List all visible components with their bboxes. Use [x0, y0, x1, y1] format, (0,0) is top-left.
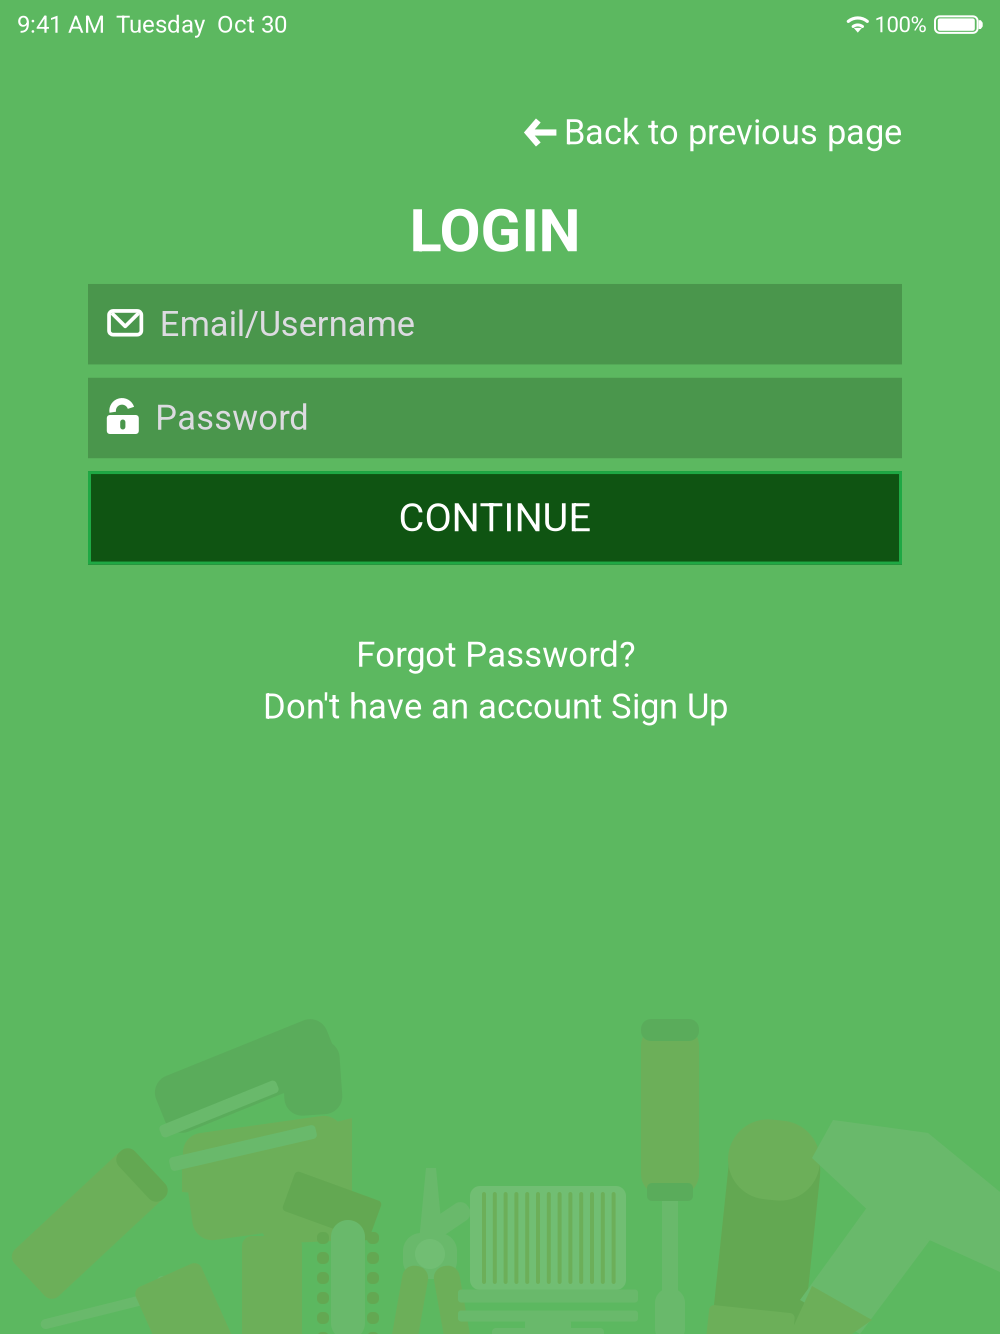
staticText: 9:41 AM Tuesday Oct 30 — [17, 10, 287, 39]
staticText: Forgot Password? — [356, 635, 635, 675]
button[interactable]: Don't have an account Sign Up — [263, 686, 728, 727]
staticText: Don't have an account Sign Up — [263, 686, 728, 727]
staticText: 100% — [875, 12, 927, 38]
staticText: LOGIN — [409, 196, 580, 266]
button[interactable]: Forgot Password? — [356, 635, 635, 675]
button[interactable]: Back to previous page — [524, 104, 902, 161]
button[interactable]: CONTINUE — [88, 471, 902, 564]
staticText: Email/Username — [160, 304, 415, 344]
staticText: Password — [155, 398, 308, 438]
staticText: Back to previous page — [564, 112, 902, 153]
staticText: CONTINUE — [398, 494, 591, 541]
button[interactable]: Email/Username — [88, 284, 902, 364]
button[interactable]: Password — [88, 378, 902, 458]
